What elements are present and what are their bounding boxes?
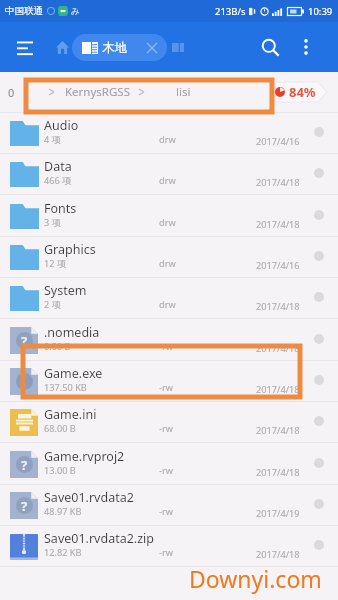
button[interactable]: Game.ini	[0, 402, 338, 442]
button[interactable]: Graphics	[0, 237, 338, 277]
staticText: 木地	[102, 40, 127, 56]
staticText: -rw	[159, 505, 173, 518]
button[interactable]: ?	[0, 320, 338, 360]
button[interactable]: ?	[0, 444, 338, 484]
staticText: drw	[159, 298, 176, 311]
button[interactable]: Select	[309, 246, 329, 266]
staticText: 13.00 B	[44, 464, 76, 477]
staticText: ?	[21, 456, 28, 474]
button[interactable]: 木地	[72, 34, 167, 61]
staticText: 4 项	[44, 133, 61, 146]
button[interactable]: Home	[48, 33, 76, 61]
button[interactable]: Game.exe	[0, 361, 338, 401]
staticText: -rw	[159, 464, 173, 477]
staticText: lisi	[176, 84, 191, 100]
staticText: 68.00 B	[44, 422, 76, 435]
button[interactable]: Select	[309, 453, 329, 473]
staticText: 2017/4/18	[256, 300, 300, 313]
button[interactable]: Audio	[0, 113, 338, 153]
staticText: drw	[159, 133, 176, 146]
button[interactable]: Select	[309, 329, 329, 349]
staticText: drw	[159, 174, 176, 187]
staticText: drw	[159, 257, 176, 270]
staticText: 2017/4/18	[256, 466, 300, 479]
staticText: 2017/4/18	[256, 342, 300, 355]
staticText: 2017/4/19	[256, 507, 300, 520]
button[interactable]: Select	[309, 494, 329, 514]
staticText: .nomedia	[44, 324, 100, 341]
staticText: 213B/s	[215, 5, 246, 18]
staticText: 2017/4/18	[256, 218, 300, 231]
staticText: -rw	[159, 546, 173, 559]
staticText: 2017/4/16	[256, 135, 300, 148]
staticText: Game.ini	[44, 406, 97, 423]
button[interactable]: Menu	[7, 30, 42, 65]
staticText: KernysRGSS	[65, 84, 130, 100]
staticText: Audio	[44, 117, 79, 134]
staticText: 2017/4/18	[256, 176, 300, 189]
staticText: Save01.rvdata2	[44, 489, 134, 506]
staticText: Save01.rvdata2.zip	[44, 530, 154, 547]
staticText: 466 项	[44, 174, 72, 187]
staticText: 2017/4/16	[256, 259, 300, 272]
staticText: drw	[159, 216, 176, 229]
other: Close tab	[141, 37, 163, 59]
button[interactable]: Select	[309, 122, 329, 142]
button[interactable]: Save01.rvdata2.zip	[0, 526, 338, 566]
staticText: 84%	[289, 83, 316, 101]
staticText: -rw	[159, 340, 173, 353]
staticText: 12 项	[44, 257, 67, 270]
staticText: Game.exe	[44, 365, 103, 382]
staticText: 2 项	[44, 298, 61, 311]
button[interactable]: Select	[309, 205, 329, 225]
staticText: 12.82 KB	[44, 546, 82, 559]
staticText: Data	[44, 158, 72, 175]
button[interactable]: Fonts	[0, 196, 338, 236]
staticText: 2017/4/18	[256, 548, 300, 561]
button[interactable]: Select	[309, 535, 329, 555]
staticText: 中国联通	[5, 5, 43, 17]
staticText: 3 项	[44, 216, 61, 229]
staticText: Game.rvproj2	[44, 448, 125, 465]
button[interactable]: Search	[252, 29, 288, 65]
button[interactable]: ?	[0, 485, 338, 525]
staticText: 2017/4/18	[256, 424, 300, 437]
staticText: -rw	[159, 422, 173, 435]
staticText: Graphics	[44, 241, 96, 258]
button[interactable]: Select	[309, 370, 329, 390]
button[interactable]: More options	[290, 31, 322, 63]
button[interactable]: Select	[309, 287, 329, 307]
button[interactable]: Select	[309, 163, 329, 183]
staticText: 48.97 KB	[44, 505, 82, 518]
staticText: 10:39	[308, 5, 333, 18]
staticText: 0	[8, 85, 15, 100]
staticText: ?	[21, 332, 28, 350]
staticText: 2017/4/18	[256, 383, 300, 396]
staticText: 137.50 KB	[44, 381, 87, 394]
button[interactable]: Data	[0, 154, 338, 194]
staticText: System	[44, 282, 87, 299]
button[interactable]: System	[0, 278, 338, 318]
button[interactable]: Select	[309, 411, 329, 431]
staticText: ?	[21, 497, 28, 515]
staticText: Downyi.com	[189, 563, 322, 594]
staticText: Fonts	[44, 200, 77, 217]
staticText: み	[71, 6, 80, 17]
staticText: 0.00 B	[44, 340, 71, 353]
staticText: -rw	[159, 381, 173, 394]
